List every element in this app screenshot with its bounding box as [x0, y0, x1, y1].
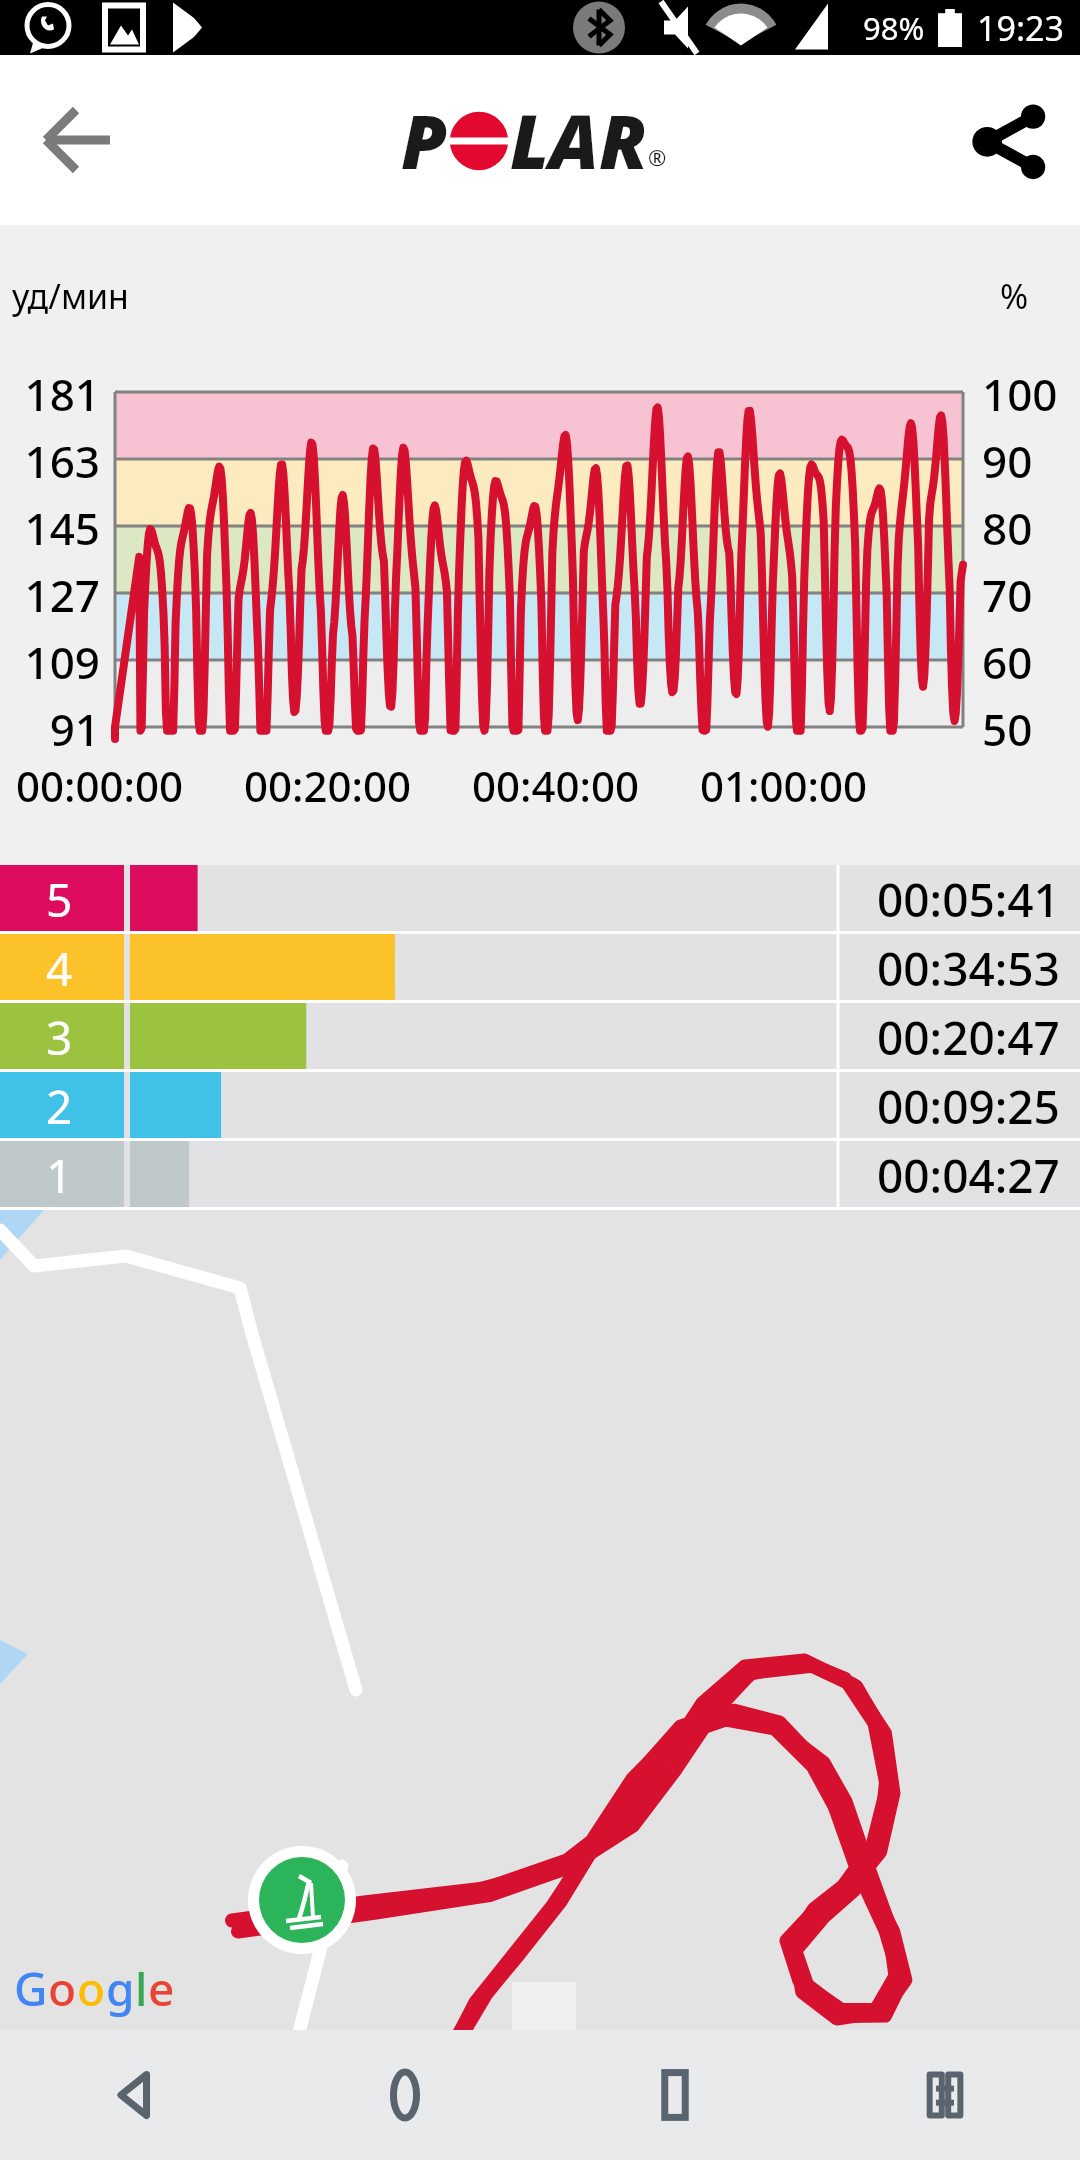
staticText: 1 — [46, 1144, 73, 1207]
staticText: 00:20:00 — [244, 757, 411, 814]
button[interactable]: Back — [0, 2030, 270, 2160]
staticText: e — [148, 1957, 175, 2020]
staticText: 01:00:00 — [700, 757, 867, 814]
button[interactable]: 5 — [0, 865, 1080, 934]
staticText: 00:40:00 — [472, 757, 639, 814]
button[interactable]: 3 — [0, 1003, 1080, 1072]
staticText: 2 — [46, 1075, 73, 1138]
staticText: 80 — [982, 498, 1033, 558]
button[interactable]: Switch app — [810, 2030, 1080, 2160]
button[interactable]: G — [0, 1210, 1080, 2030]
staticText: ® — [648, 142, 667, 172]
staticText: 60 — [982, 632, 1033, 692]
staticText: LAR — [510, 90, 648, 191]
staticText: 109 — [0, 632, 100, 692]
staticText: 4 — [46, 937, 73, 1000]
button[interactable]: Share — [962, 95, 1052, 185]
staticText: 98% — [863, 7, 925, 49]
staticText: 00:00:00 — [16, 757, 183, 814]
staticText: 145 — [0, 498, 100, 558]
staticText: o — [48, 1957, 77, 2020]
button[interactable]: Home — [270, 2030, 540, 2160]
staticText: 181 — [0, 364, 100, 424]
button[interactable]: Back — [26, 90, 126, 190]
staticText: 00:20:47 — [877, 1006, 1060, 1069]
staticText: 00:04:27 — [877, 1144, 1060, 1207]
staticText: 5 — [46, 868, 73, 931]
staticText: 19:23 — [977, 5, 1064, 51]
staticText: 00:05:41 — [877, 868, 1060, 931]
staticText: 70 — [982, 565, 1033, 625]
staticText: P — [401, 90, 448, 191]
staticText: 50 — [982, 699, 1033, 759]
staticText: 00:09:25 — [877, 1075, 1060, 1138]
staticText: 00:34:53 — [877, 937, 1060, 1000]
staticText: 127 — [0, 565, 100, 625]
staticText: 90 — [982, 431, 1033, 491]
staticText: % — [1000, 273, 1029, 319]
button[interactable]: 2 — [0, 1072, 1080, 1141]
staticText: G — [14, 1957, 48, 2020]
staticText: g — [106, 1957, 135, 2020]
staticText: 3 — [46, 1006, 73, 1069]
button[interactable]: 4 — [0, 934, 1080, 1003]
staticText: o — [77, 1957, 106, 2020]
staticText: уд/мин — [12, 273, 129, 319]
button[interactable]: Recent apps — [540, 2030, 810, 2160]
button[interactable]: 1 — [0, 1141, 1080, 1210]
staticText: 91 — [0, 699, 100, 759]
staticText: 163 — [0, 431, 100, 491]
staticText: 100 — [982, 364, 1058, 424]
staticText: l — [135, 1957, 148, 2020]
